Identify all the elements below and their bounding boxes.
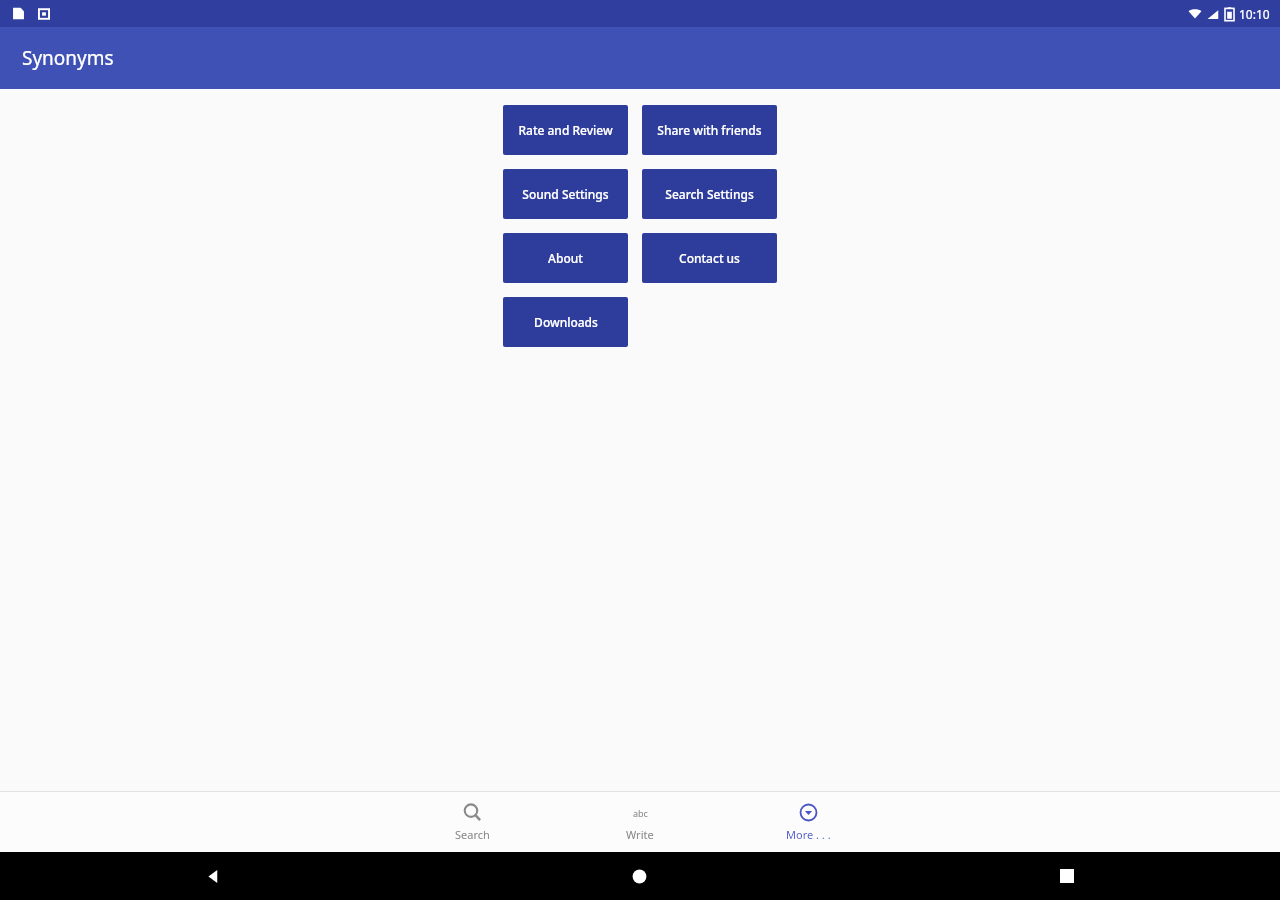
button[interactable]: Search xyxy=(388,792,556,852)
staticText: Contact us xyxy=(679,250,740,266)
staticText: Sound Settings xyxy=(522,186,609,202)
button[interactable]: Downloads xyxy=(503,297,628,347)
button[interactable]: Rate and Review xyxy=(503,105,628,155)
staticText: Search Settings xyxy=(665,186,754,202)
button[interactable]: About xyxy=(503,233,628,283)
button[interactable]: Back xyxy=(0,852,426,900)
staticText: Downloads xyxy=(534,314,598,330)
button[interactable]: abc xyxy=(556,792,724,852)
staticText: Write xyxy=(626,827,654,842)
button[interactable]: Share with friends xyxy=(642,105,777,155)
staticText: Rate and Review xyxy=(518,122,613,138)
staticText: More . . . xyxy=(786,827,831,842)
staticText: 10:10 xyxy=(1239,6,1270,22)
staticText: Synonyms xyxy=(22,45,114,71)
staticText: abc xyxy=(633,807,648,819)
button[interactable]: Sound Settings xyxy=(503,169,628,219)
button[interactable]: More . . . xyxy=(724,792,892,852)
staticText: Search xyxy=(455,827,490,842)
button[interactable]: Recent apps xyxy=(853,852,1280,900)
button[interactable]: Search Settings xyxy=(642,169,777,219)
staticText: Share with friends xyxy=(657,122,762,138)
button[interactable]: Home xyxy=(426,852,853,900)
button[interactable]: Contact us xyxy=(642,233,777,283)
staticText: About xyxy=(548,250,583,266)
